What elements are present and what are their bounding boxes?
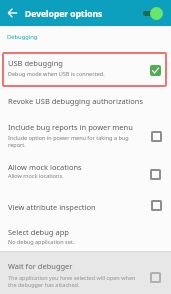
staticText: Debug mode when USB is connected. — [8, 70, 105, 77]
staticText: Wait for debugger — [8, 261, 73, 271]
button[interactable] — [150, 272, 161, 283]
button[interactable]: Include bug reports in power menu — [0, 116, 171, 151]
button[interactable] — [6, 6, 20, 20]
staticText: Revoke USB debugging authorizations — [8, 96, 144, 106]
button[interactable] — [151, 131, 162, 142]
button[interactable]: Wait for debugger — [0, 251, 171, 294]
staticText: The application you have selected will o… — [8, 274, 136, 281]
button[interactable] — [150, 169, 161, 180]
staticText: Developer options — [25, 8, 103, 20]
staticText: No debug application set. — [8, 238, 75, 245]
staticText: Debugging — [7, 33, 38, 41]
button[interactable] — [141, 5, 165, 21]
button[interactable]: Revoke USB debugging authorizations — [0, 90, 171, 110]
staticText: report. — [8, 141, 26, 148]
button[interactable] — [150, 65, 161, 76]
staticText: Include option in power menu for taking … — [8, 134, 129, 141]
button[interactable]: USB debugging — [2, 52, 167, 87]
button[interactable]: Allow mock locations — [0, 156, 171, 183]
staticText: Select debug app — [8, 227, 69, 237]
button[interactable] — [151, 200, 162, 211]
staticText: the debugger has attached. — [8, 281, 80, 288]
staticText: Allow mock locations. — [8, 172, 64, 179]
staticText: Include bug reports in power menu — [8, 122, 133, 132]
staticText: USB debugging — [8, 58, 63, 68]
staticText: Allow mock locations — [8, 162, 82, 172]
button[interactable]: View attribute inspection — [0, 196, 171, 216]
staticText: View attribute inspection — [8, 202, 96, 212]
button[interactable]: Select debug app — [0, 221, 171, 249]
